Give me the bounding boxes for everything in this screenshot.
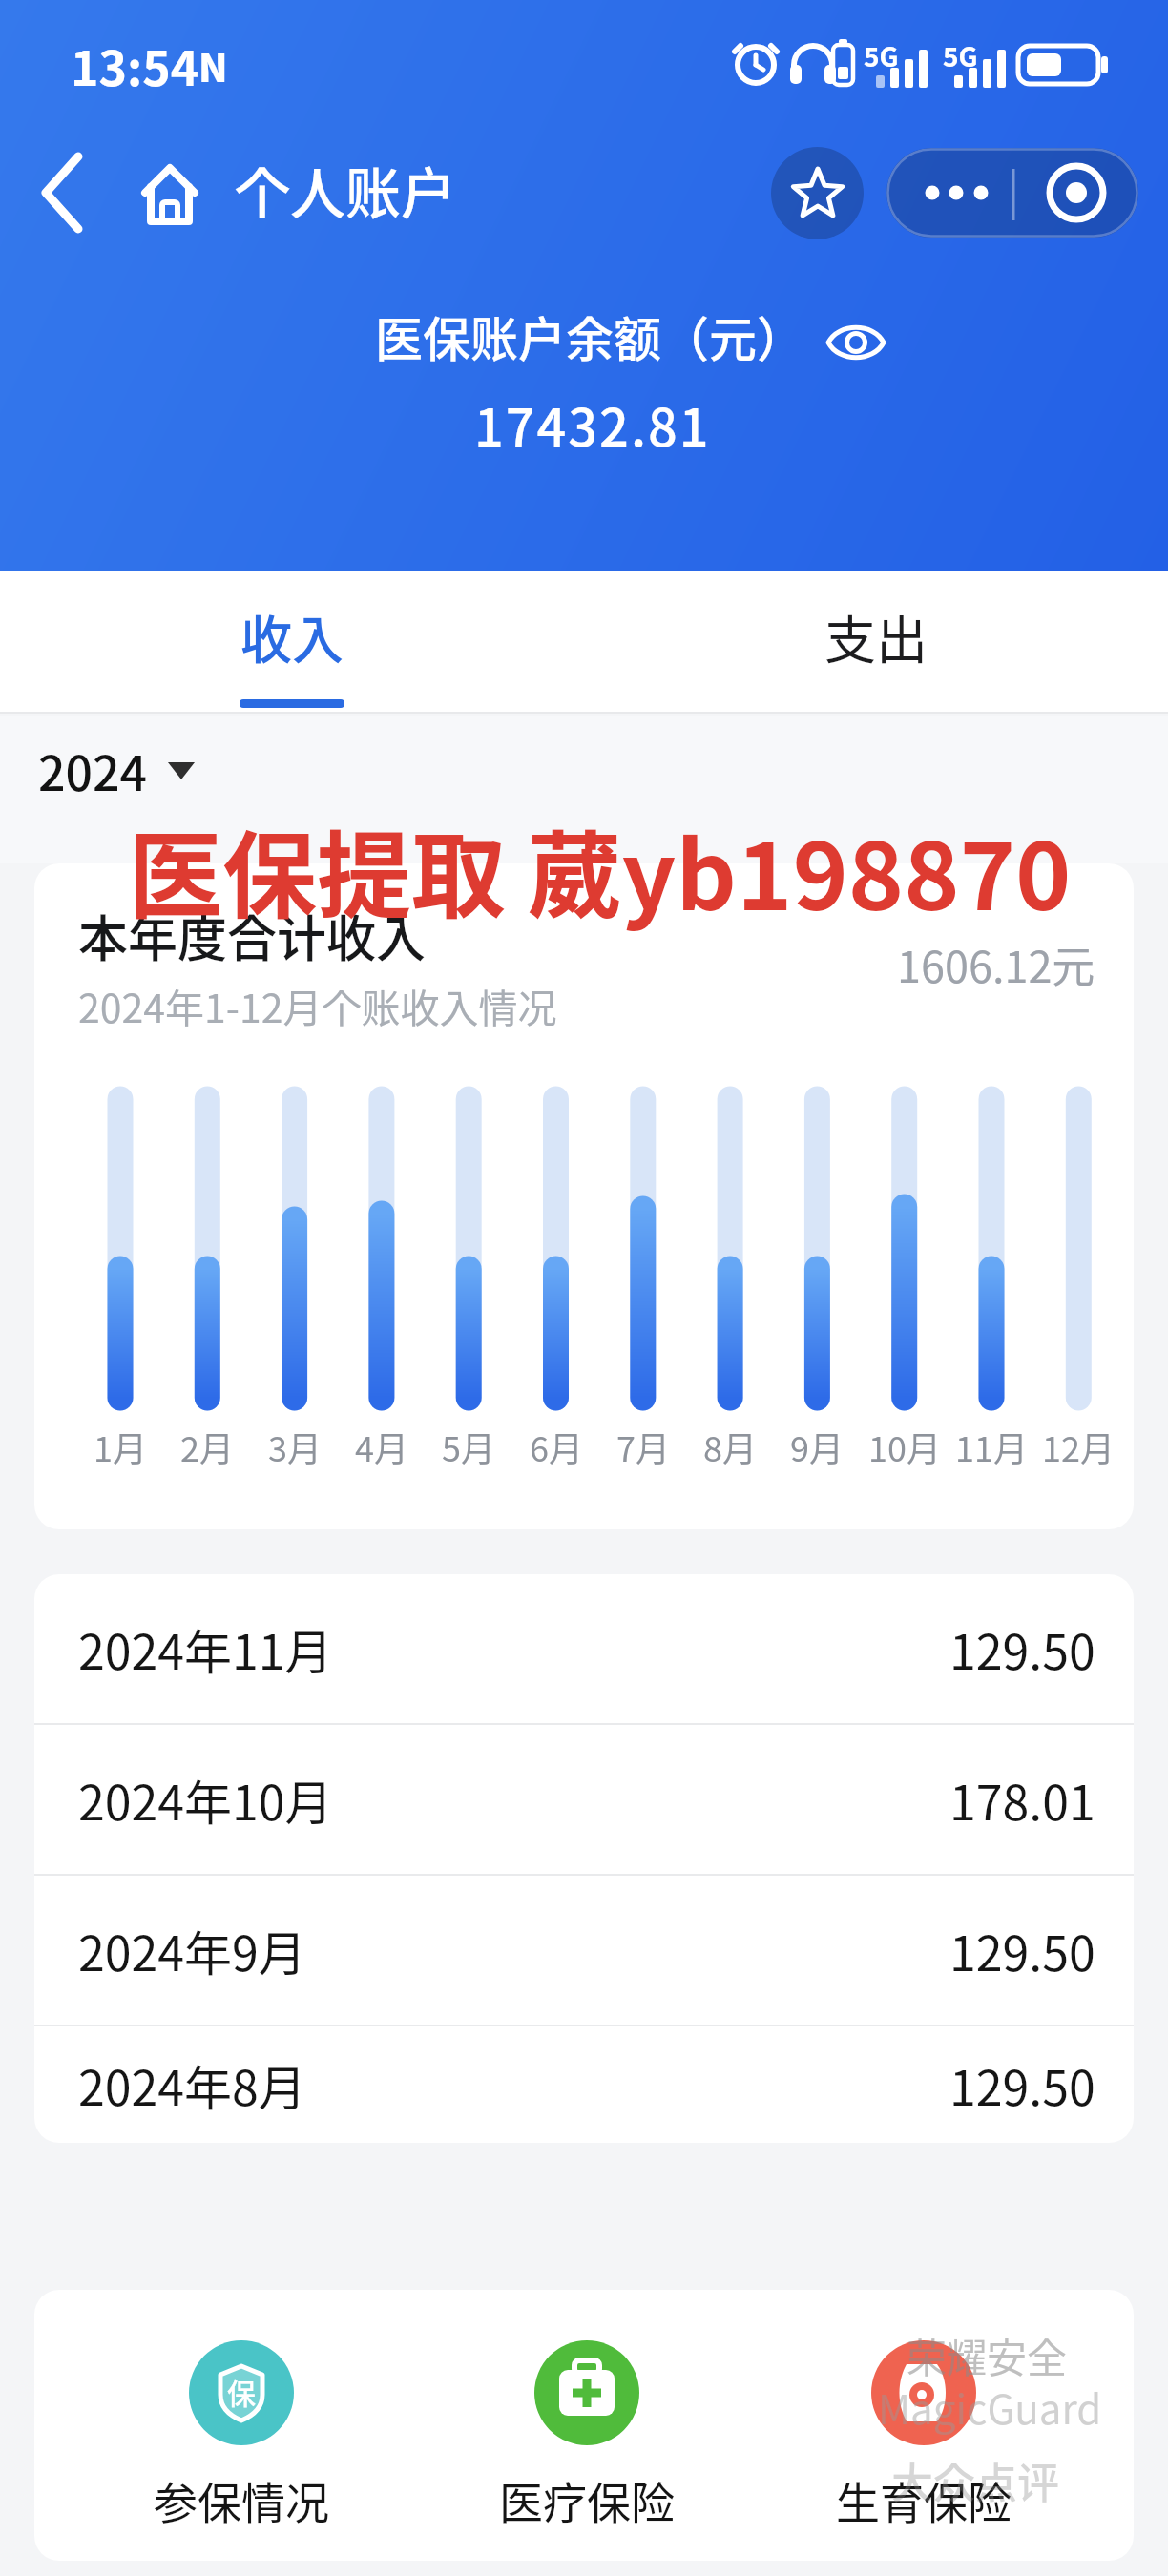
button[interactable]: 2024年9月 — [34, 1876, 1134, 2025]
staticText: 3月 — [268, 1422, 322, 1471]
staticText: 5月 — [442, 1422, 495, 1471]
staticText: 8月 — [703, 1422, 757, 1471]
button[interactable] — [826, 315, 886, 370]
button[interactable]: 医疗保险 — [482, 2340, 692, 2532]
staticText: 129.50 — [949, 1614, 1095, 1683]
button[interactable] — [29, 134, 219, 248]
staticText: 7月 — [616, 1422, 670, 1471]
button[interactable]: 收入 — [0, 571, 584, 714]
staticText: 12月 — [1042, 1422, 1115, 1471]
button[interactable]: 2024年11月 — [34, 1574, 1134, 1723]
staticText: 129.50 — [949, 2050, 1095, 2119]
staticText: 10月 — [868, 1422, 941, 1471]
staticText: 11月 — [955, 1422, 1028, 1471]
staticText: 2月 — [180, 1422, 234, 1471]
staticText: 2024年8月 — [78, 2050, 306, 2119]
button[interactable]: 生育保险 — [819, 2340, 1029, 2532]
staticText: 1月 — [94, 1422, 147, 1471]
staticText: 1606.12元 — [897, 933, 1095, 995]
button[interactable] — [886, 148, 1012, 238]
staticText: 保 — [227, 2371, 256, 2412]
button[interactable] — [771, 147, 864, 239]
staticText: 9月 — [790, 1422, 844, 1471]
staticText: N — [198, 38, 228, 93]
staticText: 2024 — [38, 736, 147, 804]
staticText: 荣耀安全 — [907, 2326, 1068, 2384]
staticText: 13:54 — [71, 31, 199, 99]
staticText: 医疗保险 — [499, 2468, 675, 2532]
staticText: 4月 — [355, 1422, 408, 1471]
staticText: 生育保险 — [836, 2468, 1012, 2532]
button[interactable]: 2024年10月 — [34, 1725, 1134, 1874]
staticText: 129.50 — [949, 1916, 1095, 1984]
staticText: 178.01 — [949, 1765, 1095, 1834]
staticText: 17432.81 — [474, 386, 711, 461]
button[interactable]: 保 — [136, 2340, 346, 2532]
button[interactable]: 2024年8月 — [34, 2026, 1134, 2143]
staticText: 5G — [864, 36, 899, 75]
staticText: 个人账户 — [235, 150, 457, 230]
staticText: 大众点评 — [891, 2450, 1059, 2511]
staticText: 参保情况 — [154, 2468, 329, 2532]
staticText: 2024年11月 — [78, 1614, 333, 1683]
staticText: 2024年9月 — [78, 1916, 306, 1984]
staticText: MagicGuard — [878, 2378, 1102, 2436]
staticText: 医保提取 葳yb198870 — [128, 800, 1072, 937]
staticText: 支出 — [824, 599, 928, 674]
button[interactable] — [1012, 148, 1138, 238]
button[interactable]: 2024 — [38, 696, 233, 843]
staticText: 2024年1-12月个账收入情况 — [78, 977, 557, 1033]
staticText: 本年度合计收入 — [78, 900, 427, 971]
button[interactable]: 支出 — [584, 571, 1168, 714]
staticText: 收入 — [240, 599, 344, 674]
staticText: 5G — [943, 36, 978, 75]
staticText: 2024年10月 — [78, 1765, 333, 1834]
staticText: 医保账户余额（元） — [375, 301, 804, 370]
staticText: 6月 — [530, 1422, 583, 1471]
